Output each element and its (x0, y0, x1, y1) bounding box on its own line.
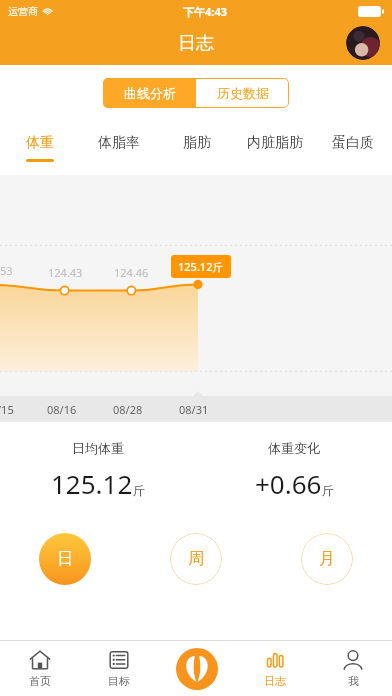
staticText: 08/28 (113, 402, 143, 417)
staticText: 蛋白质 (332, 134, 374, 152)
button[interactable]: 曲线分析 (103, 78, 196, 108)
staticText: 曲线分析 (124, 85, 176, 101)
staticText: 斤 (322, 483, 334, 498)
staticText: 历史数据 (217, 85, 269, 101)
button[interactable]: 目标 (79, 641, 158, 696)
staticText: 首页 (29, 674, 51, 688)
button[interactable]: 体重 (0, 120, 79, 175)
button[interactable]: 首页 (0, 641, 79, 696)
staticText: 脂肪 (183, 134, 211, 152)
staticText: .53 (0, 263, 13, 278)
staticText: +0.66 (255, 466, 322, 501)
staticText: 斤 (133, 483, 145, 498)
button[interactable]: Add record (158, 641, 236, 696)
staticText: 运营商 (8, 5, 38, 18)
staticText: 目标 (108, 674, 130, 688)
staticText: 08/16 (47, 402, 77, 417)
staticText: 日志 (264, 674, 286, 688)
staticText: 日 (57, 549, 73, 569)
staticText: 124.46 (114, 265, 149, 280)
staticText: 体重变化 (268, 440, 320, 456)
staticText: 下午4:43 (183, 4, 227, 19)
button[interactable]: 周 (170, 533, 222, 585)
button[interactable]: 月 (301, 533, 353, 585)
staticText: 周 (188, 549, 204, 569)
button[interactable]: 我 (314, 641, 392, 696)
button[interactable]: 脂肪 (158, 120, 236, 175)
button[interactable]: 日志 (236, 641, 314, 696)
staticText: 内脏脂肪 (247, 134, 303, 152)
staticText: 125.12 (51, 466, 133, 501)
staticText: /15 (0, 402, 14, 417)
staticText: 我 (348, 674, 359, 688)
button[interactable]: 历史数据 (196, 78, 289, 108)
button[interactable]: 内脏脂肪 (236, 120, 314, 175)
staticText: 124.43 (48, 265, 83, 280)
staticText: 体脂率 (98, 134, 140, 152)
staticText: 08/31 (179, 402, 209, 417)
staticText: 125.12斤 (178, 259, 224, 274)
button[interactable]: 日 (39, 533, 91, 585)
staticText: 体重 (26, 134, 54, 152)
button[interactable]: Profile (346, 26, 380, 60)
staticText: 日志 (178, 32, 214, 55)
button[interactable]: 蛋白质 (314, 120, 392, 175)
staticText: 月 (319, 549, 335, 569)
staticText: 日均体重 (72, 440, 124, 456)
button[interactable]: 体脂率 (79, 120, 158, 175)
